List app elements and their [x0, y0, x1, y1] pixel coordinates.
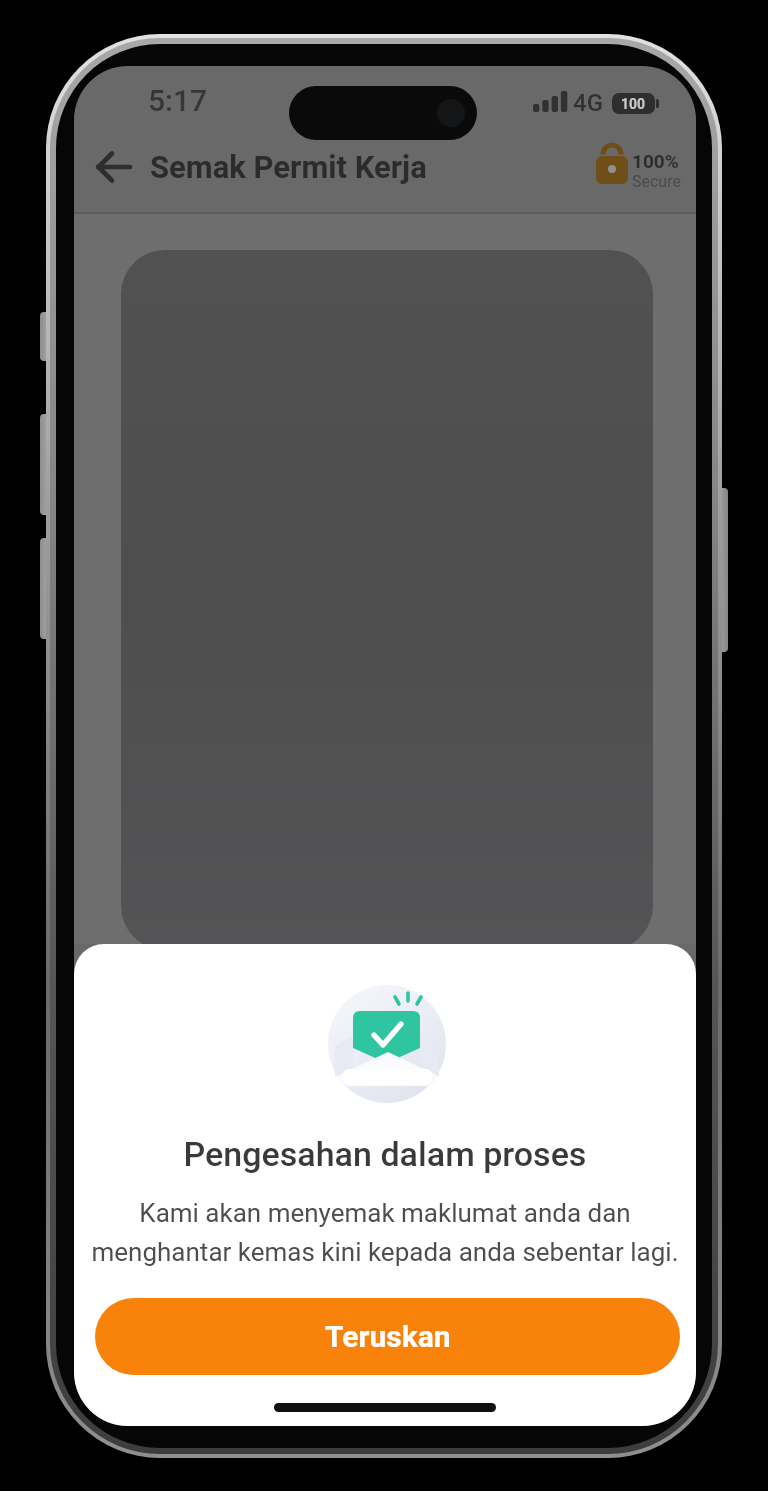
button[interactable]: Teruskan — [95, 1298, 680, 1375]
staticText: 4G — [573, 89, 603, 117]
button[interactable] — [97, 150, 131, 184]
staticText: 5:17 — [148, 83, 208, 118]
staticText: 100 — [621, 96, 646, 112]
staticText: 100% — [632, 150, 679, 172]
staticText: Kami akan menyemak maklumat anda dan — [74, 1198, 696, 1228]
staticText: Teruskan — [325, 1319, 451, 1354]
staticText: menghantar kemas kini kepada anda sebent… — [74, 1237, 696, 1267]
staticText: Semak Permit Kerja — [150, 149, 427, 185]
staticText: Pengesahan dalam proses — [74, 1134, 696, 1174]
staticText: Secure — [632, 172, 681, 191]
